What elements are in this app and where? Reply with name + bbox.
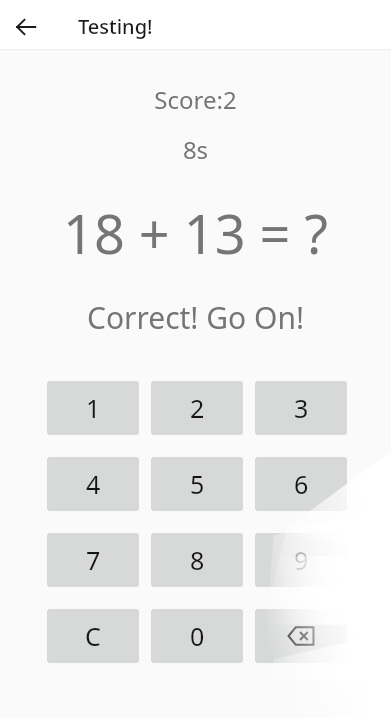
staticText: Score:2 bbox=[0, 83, 391, 116]
button[interactable]: 7 bbox=[47, 533, 139, 587]
staticText: 7 bbox=[86, 543, 101, 577]
button[interactable]: 1 bbox=[47, 381, 139, 435]
staticText: 18 + 13 = ? bbox=[0, 196, 391, 270]
staticText: Correct! Go On! bbox=[0, 297, 391, 338]
staticText: 2 bbox=[190, 391, 205, 425]
button[interactable]: Back bbox=[8, 9, 44, 45]
button[interactable]: 3 bbox=[255, 381, 347, 435]
staticText: C bbox=[85, 619, 101, 653]
button[interactable]: 2 bbox=[151, 381, 243, 435]
button[interactable]: Clear bbox=[47, 609, 139, 663]
staticText: 5 bbox=[190, 467, 205, 501]
button[interactable]: 9 bbox=[255, 533, 347, 587]
button[interactable]: 5 bbox=[151, 457, 243, 511]
button[interactable]: 6 bbox=[255, 457, 347, 511]
staticText: 8s bbox=[0, 133, 391, 166]
staticText: 9 bbox=[294, 543, 309, 577]
staticText: 4 bbox=[86, 467, 101, 501]
staticText: Testing! bbox=[78, 13, 153, 40]
staticText: 0 bbox=[190, 619, 205, 653]
button[interactable]: 4 bbox=[47, 457, 139, 511]
button[interactable]: 8 bbox=[151, 533, 243, 587]
button[interactable]: Backspace bbox=[255, 609, 347, 663]
staticText: 1 bbox=[86, 391, 101, 425]
button[interactable]: 0 bbox=[151, 609, 243, 663]
staticText: 6 bbox=[294, 467, 309, 501]
staticText: 8 bbox=[190, 543, 205, 577]
staticText: 3 bbox=[294, 391, 309, 425]
